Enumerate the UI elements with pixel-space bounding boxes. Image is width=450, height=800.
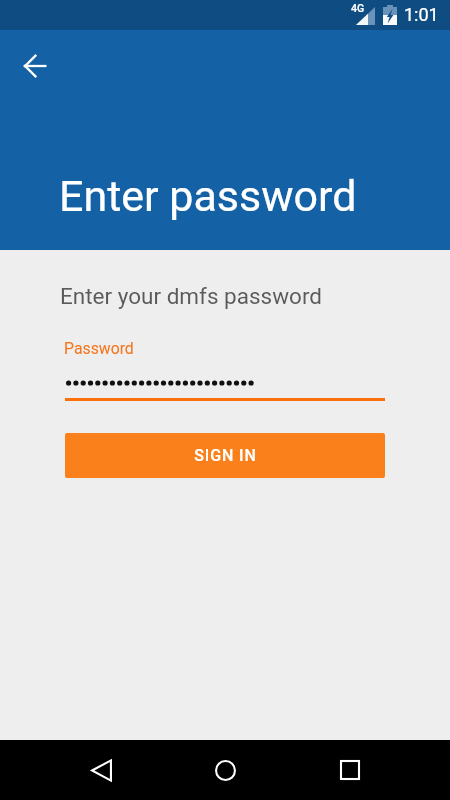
button[interactable]: Password field [65, 365, 385, 401]
staticText: SIGN IN [194, 446, 257, 465]
button[interactable]: Home [201, 746, 249, 794]
staticText: Enter your dmfs password [60, 283, 323, 309]
staticText: 4G [351, 2, 365, 14]
button[interactable]: Recents [326, 746, 374, 794]
button[interactable]: Back [11, 42, 59, 90]
staticText: 1:01 [404, 4, 439, 25]
staticText: Password [64, 339, 134, 358]
staticText: Enter password [59, 171, 357, 221]
button[interactable]: Back [77, 746, 125, 794]
button[interactable]: SIGN IN [65, 433, 385, 478]
